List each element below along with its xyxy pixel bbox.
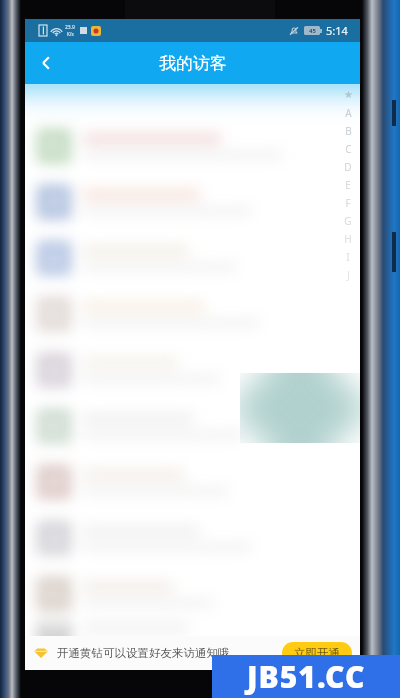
- button[interactable]: 开通黄钻可以设置好友来访通知哦: [25, 636, 360, 670]
- staticText: H: [344, 232, 352, 246]
- staticText: J: [347, 268, 350, 282]
- button[interactable]: [25, 342, 360, 398]
- staticText: ★: [344, 89, 353, 101]
- button[interactable]: [25, 566, 360, 622]
- staticText: G: [344, 214, 352, 228]
- button[interactable]: A: [340, 104, 356, 122]
- button[interactable]: [25, 398, 360, 454]
- button[interactable]: [25, 118, 360, 174]
- button[interactable]: ★: [340, 86, 356, 104]
- button[interactable]: 立即开通: [282, 642, 352, 664]
- button[interactable]: [25, 230, 360, 286]
- staticText: F: [345, 196, 351, 210]
- staticText: 5:14: [326, 23, 348, 38]
- staticText: A: [345, 106, 352, 120]
- button[interactable]: C: [340, 140, 356, 158]
- button[interactable]: [25, 174, 360, 230]
- staticText: D: [344, 160, 352, 174]
- button[interactable]: [25, 510, 360, 566]
- button[interactable]: [25, 454, 360, 510]
- staticText: C: [345, 142, 352, 156]
- button[interactable]: B: [340, 122, 356, 140]
- button[interactable]: 返回: [25, 42, 67, 84]
- staticText: 我的访客: [159, 53, 227, 74]
- staticText: E: [345, 178, 351, 192]
- staticText: K/s: [67, 31, 74, 37]
- staticText: JB51.CC: [247, 656, 366, 697]
- staticText: 立即开通: [294, 646, 340, 660]
- button[interactable]: [25, 286, 360, 342]
- button[interactable]: G: [340, 212, 356, 230]
- button[interactable]: H: [340, 230, 356, 248]
- staticText: B: [345, 124, 352, 138]
- staticText: 23.9: [65, 24, 75, 31]
- staticText: 开通黄钻可以设置好友来访通知哦: [57, 646, 230, 660]
- staticText: 45: [309, 27, 316, 35]
- button[interactable]: E: [340, 176, 356, 194]
- button[interactable]: J: [340, 266, 356, 284]
- staticText: I: [346, 250, 350, 264]
- button[interactable]: [25, 622, 360, 636]
- button[interactable]: F: [340, 194, 356, 212]
- button[interactable]: D: [340, 158, 356, 176]
- button[interactable]: I: [340, 248, 356, 266]
